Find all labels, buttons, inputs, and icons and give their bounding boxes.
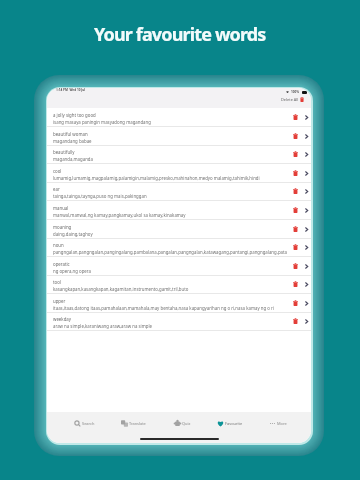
staticText: manual bbox=[53, 205, 69, 211]
staticText: a jolly sight too good bbox=[53, 112, 96, 118]
button[interactable]: Open entry bbox=[302, 187, 310, 195]
button[interactable]: Open entry bbox=[302, 280, 310, 288]
button[interactable]: Delete bbox=[290, 205, 300, 215]
button[interactable]: Delete bbox=[290, 242, 300, 252]
staticText: beautifully bbox=[53, 149, 75, 155]
staticText: daing,daing,taghoy bbox=[53, 231, 93, 237]
button[interactable]: Open entry bbox=[302, 225, 310, 233]
staticText: itaas,itaas,datong itaas,pamahalaan,mama… bbox=[53, 305, 274, 311]
staticText: manwal,manwal,ng kamay,pangkamay,ukol sa… bbox=[53, 212, 186, 218]
button[interactable]: cool bbox=[47, 164, 311, 183]
button[interactable]: manual bbox=[47, 201, 311, 220]
button[interactable]: Open entry bbox=[302, 317, 310, 325]
button[interactable]: Translate bbox=[109, 412, 158, 434]
staticText: noun bbox=[53, 242, 64, 248]
button[interactable]: Delete bbox=[290, 298, 300, 308]
staticText: operatic bbox=[53, 261, 70, 267]
button[interactable]: beautiful woman bbox=[47, 127, 311, 146]
button[interactable]: Delete bbox=[290, 261, 300, 271]
button[interactable]: operatic bbox=[47, 257, 311, 276]
button[interactable]: Delete bbox=[290, 149, 300, 159]
button[interactable]: tool bbox=[47, 275, 311, 294]
staticText: lumamig,lumamig,magpalamig,palamigin,mal… bbox=[53, 175, 287, 181]
staticText: tool bbox=[53, 279, 61, 285]
staticText: Delete All bbox=[281, 97, 299, 102]
button[interactable]: moaning bbox=[47, 220, 311, 239]
button[interactable]: weekday bbox=[47, 312, 311, 331]
staticText: Translate bbox=[129, 421, 146, 426]
button[interactable]: Delete All bbox=[280, 96, 305, 103]
staticText: tainga,tainga,taynga,puso ng mais,paking… bbox=[53, 193, 147, 199]
button[interactable]: noun bbox=[47, 238, 311, 257]
staticText: weekday bbox=[53, 316, 71, 322]
staticText: upper bbox=[53, 298, 66, 304]
staticText: cool bbox=[53, 168, 62, 174]
staticText: kasangkapan,kasangkapan,kagamitan,instru… bbox=[53, 286, 189, 292]
button[interactable]: Delete bbox=[290, 112, 300, 122]
button[interactable]: Favourite bbox=[206, 412, 254, 434]
staticText: ear bbox=[53, 186, 60, 192]
button[interactable]: beautifully bbox=[47, 145, 311, 164]
button[interactable]: Delete bbox=[290, 168, 300, 178]
staticText: moaning bbox=[53, 224, 72, 230]
staticText: magandang babae bbox=[53, 138, 92, 144]
staticText: beautiful woman bbox=[53, 131, 88, 137]
button[interactable]: upper bbox=[47, 294, 311, 313]
staticText: 100% bbox=[291, 90, 300, 94]
button[interactable]: Delete bbox=[290, 316, 300, 326]
button[interactable]: ear bbox=[47, 182, 311, 201]
staticText: ng opera,ng opera bbox=[53, 268, 91, 274]
button[interactable]: Search bbox=[60, 412, 109, 434]
button[interactable]: Open entry bbox=[302, 243, 310, 251]
staticText: Favourite bbox=[225, 421, 243, 426]
button[interactable]: Open entry bbox=[302, 206, 310, 214]
button[interactable]: Open entry bbox=[302, 150, 310, 158]
staticText: 1:14 PM Wed 10 Jul bbox=[56, 88, 86, 92]
button[interactable]: Open entry bbox=[302, 299, 310, 307]
button[interactable]: More bbox=[254, 412, 302, 434]
staticText: Quiz bbox=[182, 421, 191, 426]
staticText: pangngalan,pangngalan,pangingalang,pamba… bbox=[53, 249, 287, 255]
button[interactable]: Delete bbox=[290, 186, 300, 196]
button[interactable]: Delete bbox=[290, 131, 300, 141]
button[interactable]: Open entry bbox=[302, 132, 310, 140]
button[interactable]: Delete bbox=[290, 224, 300, 234]
button[interactable]: Delete bbox=[290, 279, 300, 289]
button[interactable]: Open entry bbox=[302, 169, 310, 177]
button[interactable]: Open entry bbox=[302, 262, 310, 270]
button[interactable]: a jolly sight too good bbox=[47, 108, 311, 127]
staticText: Your favourite words bbox=[94, 22, 266, 47]
button[interactable]: Open entry bbox=[302, 113, 310, 121]
staticText: araw na simple,karaniwang araw,araw na s… bbox=[53, 323, 152, 329]
staticText: More bbox=[277, 421, 287, 426]
staticText: Search bbox=[82, 421, 95, 426]
staticText: isang masaya paningin masyadong magandan… bbox=[53, 119, 151, 125]
button[interactable]: Quiz bbox=[158, 412, 206, 434]
staticText: maganda,maganda bbox=[53, 156, 93, 162]
